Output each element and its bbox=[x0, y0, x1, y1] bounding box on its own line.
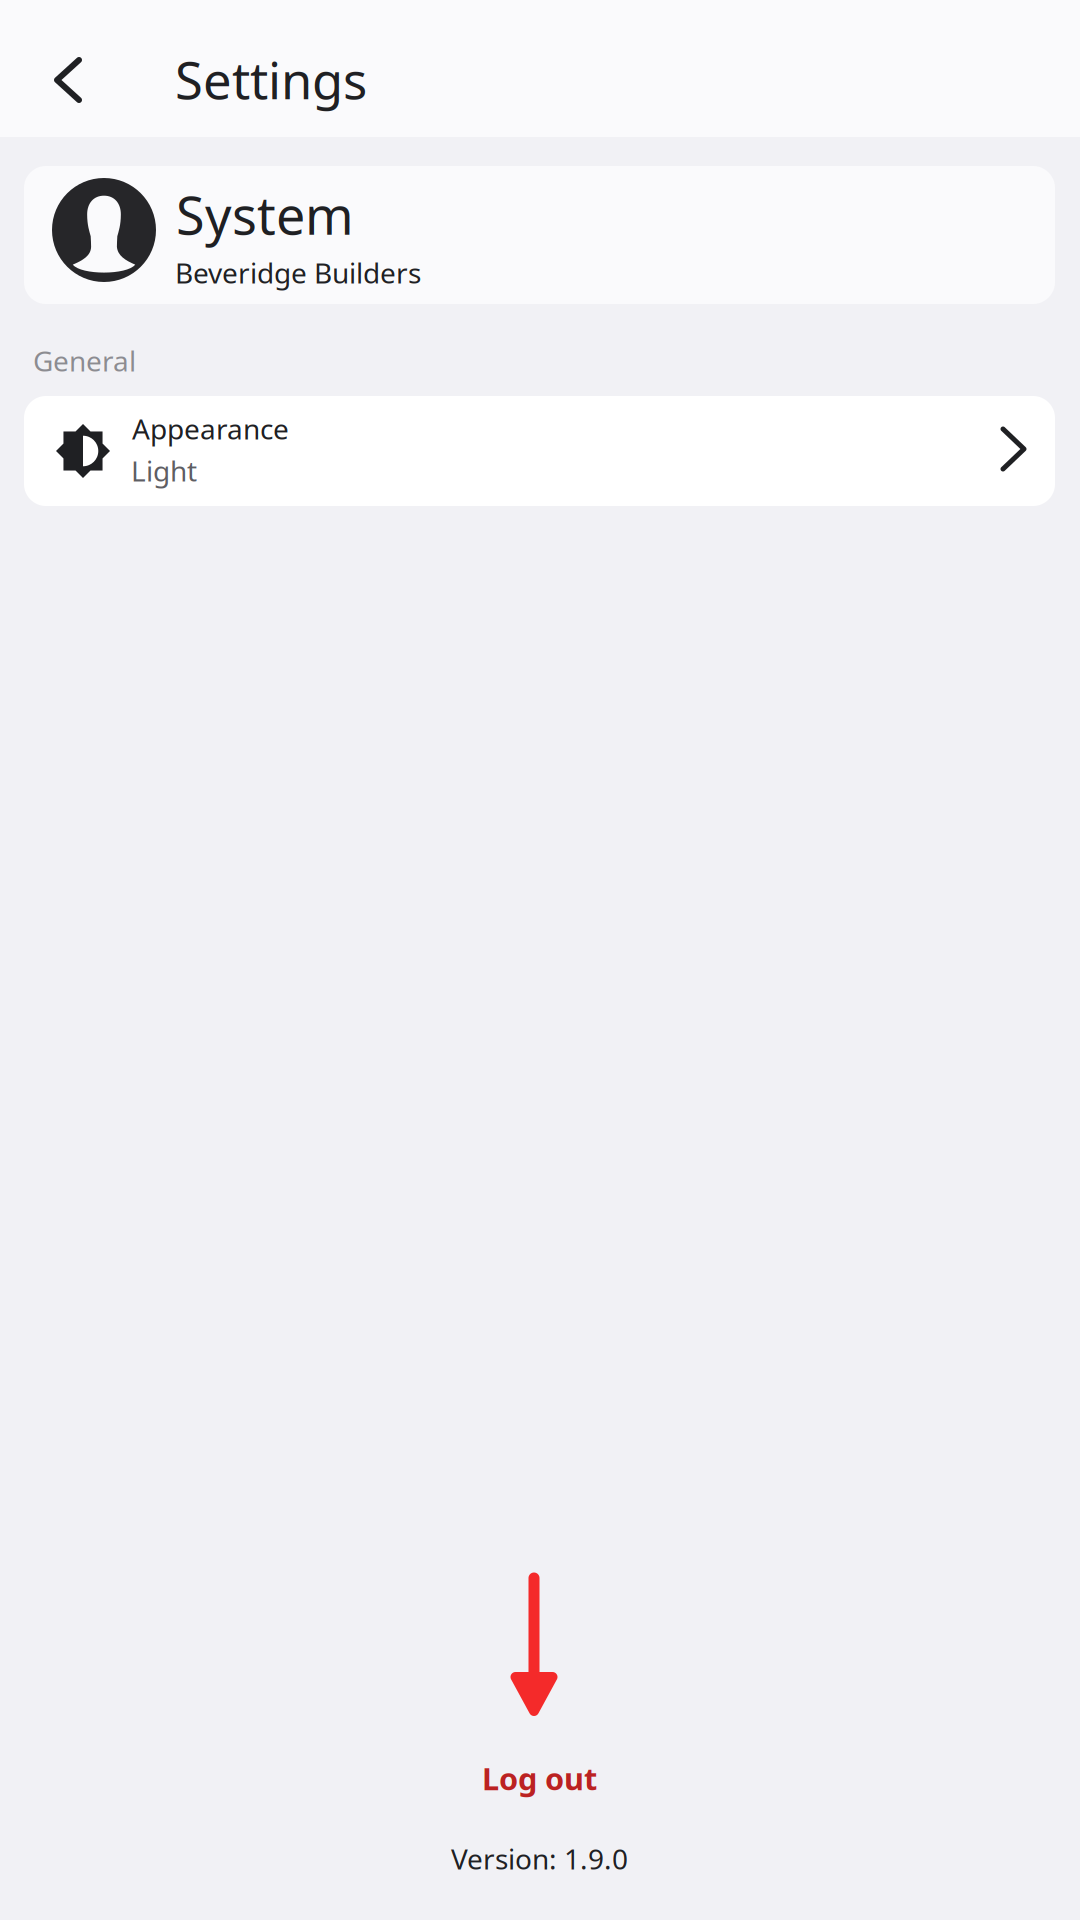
staticText: Settings bbox=[175, 46, 367, 113]
staticText: Appearance bbox=[132, 410, 289, 447]
button[interactable]: Back bbox=[20, 32, 116, 128]
staticText: Beveridge Builders bbox=[175, 254, 421, 291]
staticText: Log out bbox=[482, 1758, 597, 1799]
staticText: Version: 1.9.0 bbox=[451, 1840, 628, 1877]
staticText: General bbox=[33, 342, 136, 379]
button[interactable]: Log out bbox=[410, 1567, 670, 1807]
button[interactable]: System bbox=[24, 166, 1055, 304]
staticText: Light bbox=[131, 452, 197, 489]
button[interactable]: Appearance bbox=[24, 396, 1055, 506]
staticText: System bbox=[176, 180, 354, 249]
